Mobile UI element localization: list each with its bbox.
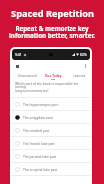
staticText: Repeat & memorize key information better…: [9, 24, 95, 40]
staticText: The cerebral part: [23, 128, 50, 132]
button[interactable]: Unanswered: [14, 71, 40, 80]
staticText: The amygdala zone: [23, 115, 54, 119]
staticText: The hippocampus part: [23, 102, 58, 106]
button[interactable]: The hippocampus part: [10, 98, 92, 110]
staticText: The occipital lobe part: [23, 167, 58, 171]
button[interactable]: Menu: [13, 62, 21, 70]
staticText: Learned: [73, 74, 86, 78]
staticText: Unanswered: [18, 74, 37, 78]
button[interactable]: The amygdala zone: [10, 111, 92, 123]
staticText: Due Today: [45, 74, 62, 78]
button[interactable]: Due Today: [40, 71, 66, 80]
staticText: 82%: [80, 52, 87, 57]
staticText: The frontal lobe part: [23, 141, 55, 145]
staticText: Spaced Repetition: [11, 7, 94, 20]
button[interactable]: Learned: [66, 71, 92, 80]
button[interactable]: The frontal lobe part: [10, 137, 92, 149]
staticText: 9:41: [15, 52, 22, 57]
button[interactable]: The occipital lobe part: [10, 163, 92, 175]
button[interactable]: The parietal lobe part: [10, 150, 92, 162]
button[interactable]: The cerebral part: [10, 124, 92, 136]
staticText: Which part of the brain is responsible f…: [15, 81, 88, 93]
staticText: The parietal lobe part: [23, 154, 57, 158]
button[interactable]: More options: [81, 62, 89, 70]
